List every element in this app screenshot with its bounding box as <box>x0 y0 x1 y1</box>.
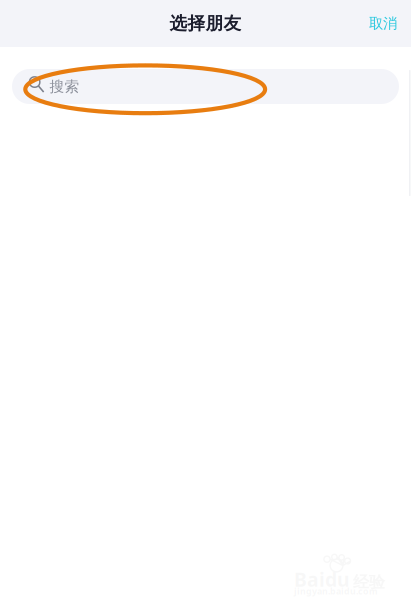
staticText: 经验 <box>353 572 385 592</box>
staticText: 取消 <box>369 14 397 32</box>
staticText: 选择朋友 <box>169 12 241 35</box>
button[interactable]: 取消 <box>355 2 411 44</box>
staticText: Baidu <box>294 566 350 592</box>
staticText: 搜索 <box>49 77 79 96</box>
button[interactable]: 搜索 <box>12 69 399 104</box>
